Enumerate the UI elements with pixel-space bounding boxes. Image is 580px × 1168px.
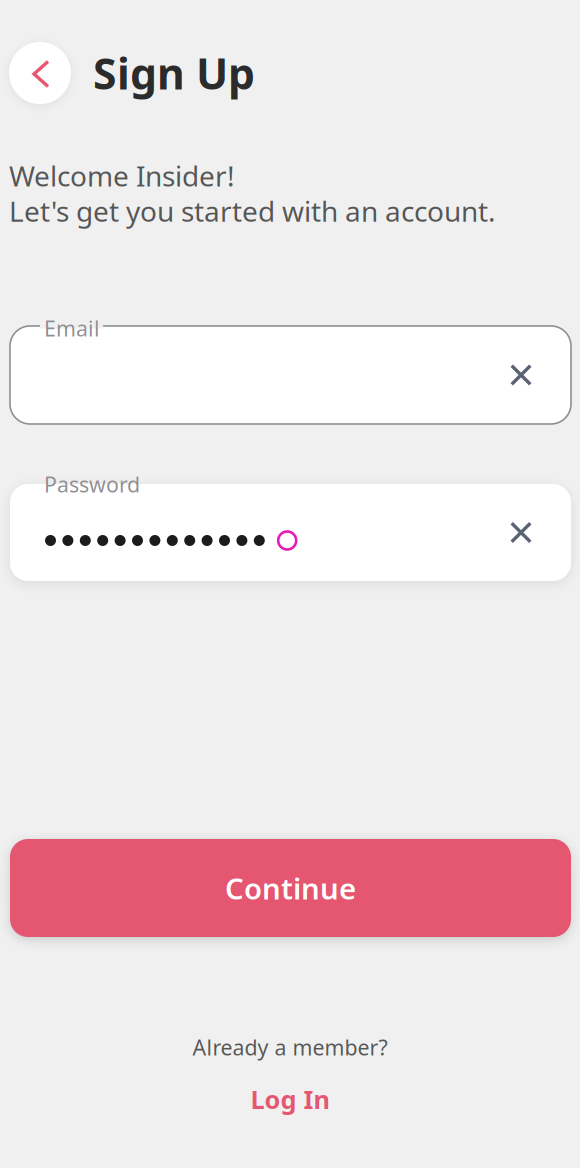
staticText: Continue xyxy=(225,868,356,907)
button[interactable]: Back xyxy=(9,42,71,104)
staticText: Sign Up xyxy=(93,45,255,101)
staticText: Already a member? xyxy=(192,1033,387,1061)
button[interactable]: Password xyxy=(10,484,571,581)
staticText: Log In xyxy=(250,1082,329,1116)
button[interactable]: Continue xyxy=(10,839,571,937)
staticText: Let's get you started with an account. xyxy=(9,192,496,229)
staticText: Welcome Insider! xyxy=(9,157,235,194)
button[interactable]: Email xyxy=(10,326,571,424)
button[interactable]: Clear password xyxy=(499,510,543,554)
button[interactable]: Log In xyxy=(250,1082,329,1116)
staticText: Password xyxy=(44,470,140,498)
staticText: Email xyxy=(44,314,100,342)
button[interactable]: Clear email xyxy=(499,353,543,397)
